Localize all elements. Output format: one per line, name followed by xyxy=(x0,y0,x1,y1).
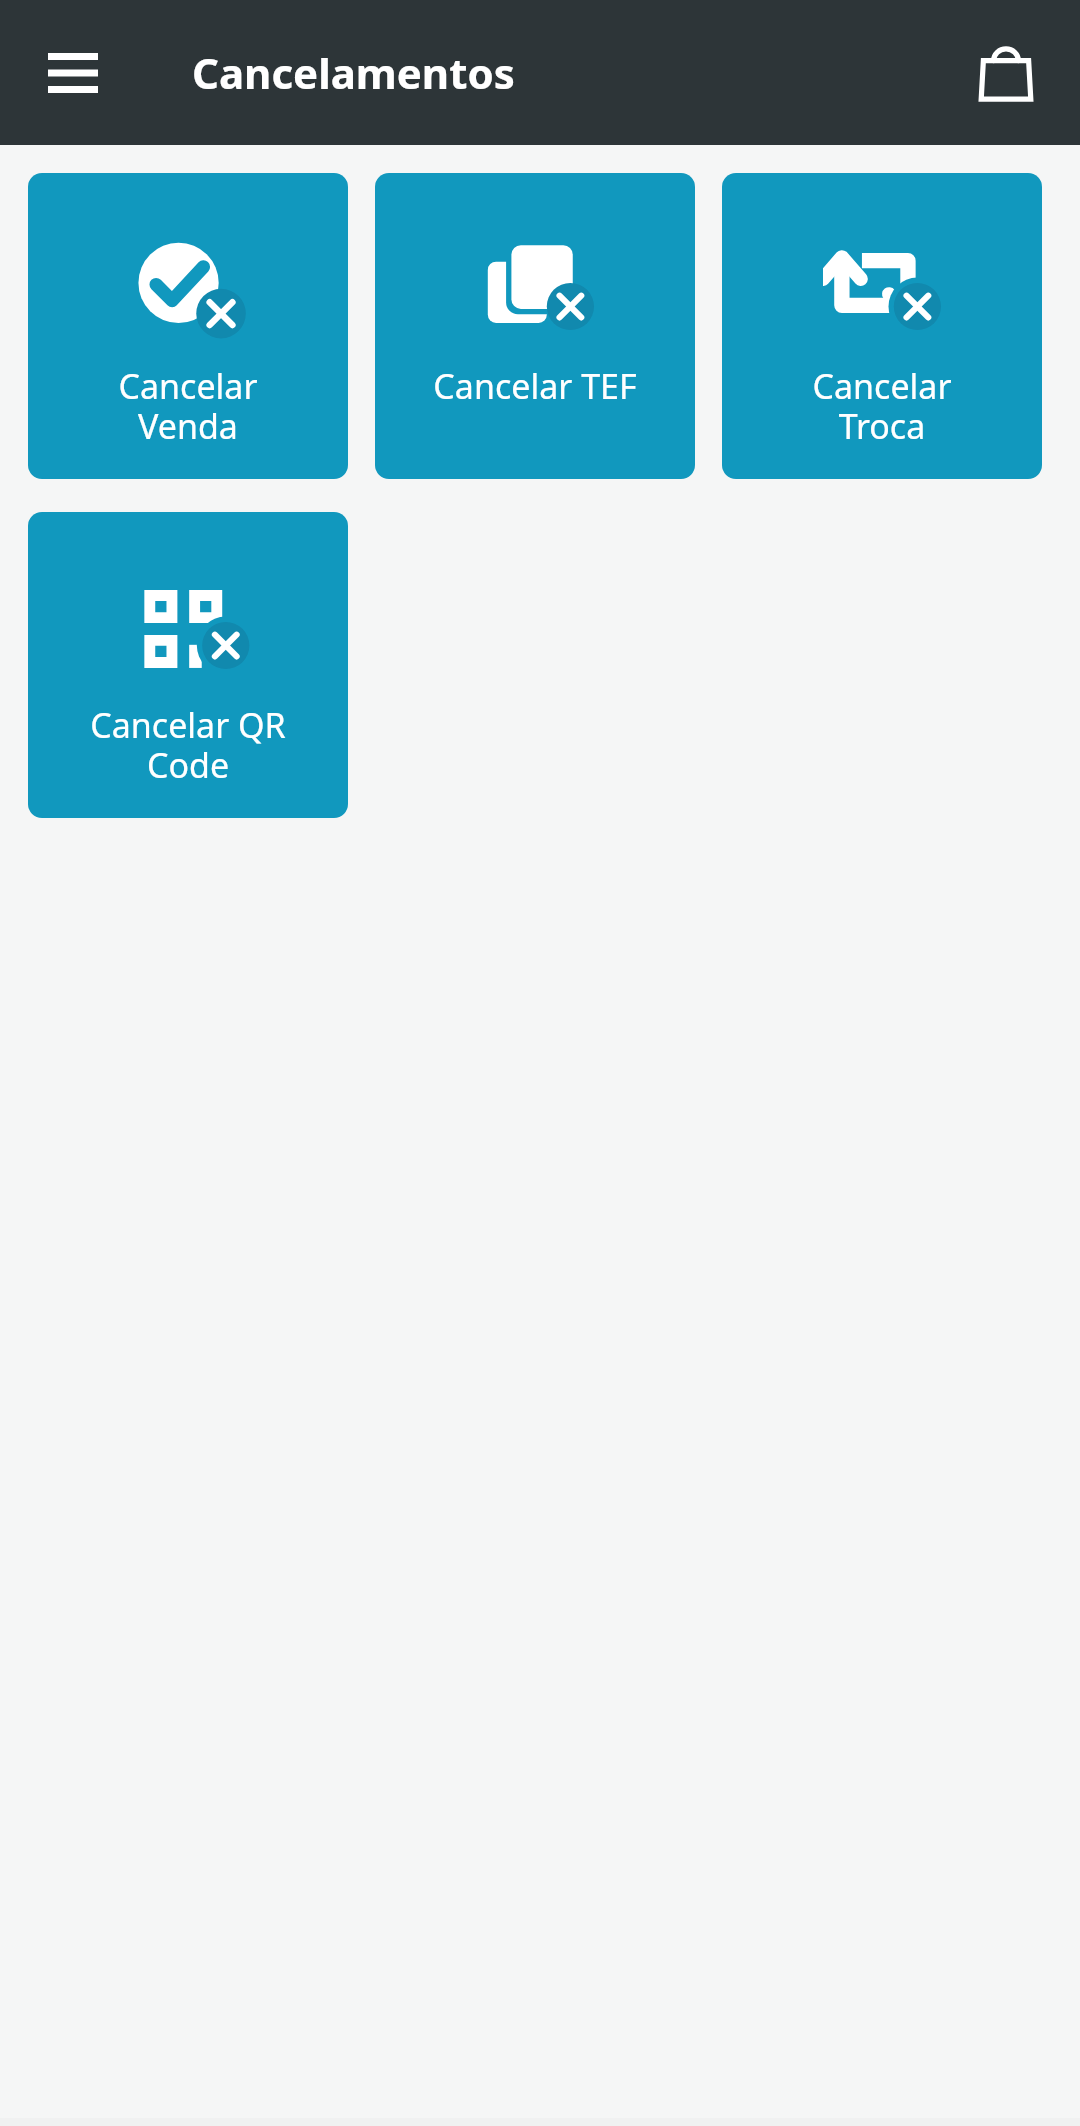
button[interactable]: Cancelar Venda xyxy=(28,173,348,479)
staticText: Cancelar Troca xyxy=(728,363,1036,449)
button[interactable]: Carrinho xyxy=(958,25,1054,121)
button[interactable]: Menu xyxy=(24,24,121,121)
button[interactable]: Cancelar Troca xyxy=(722,173,1042,479)
staticText: Cancelar TEF xyxy=(381,363,689,409)
staticText: Cancelar QR Code xyxy=(34,702,342,788)
staticText: Cancelamentos xyxy=(192,44,515,101)
button[interactable]: Cancelar QR Code xyxy=(28,512,348,818)
button[interactable]: Cancelar TEF xyxy=(375,173,695,479)
staticText: Cancelar Venda xyxy=(34,363,342,449)
